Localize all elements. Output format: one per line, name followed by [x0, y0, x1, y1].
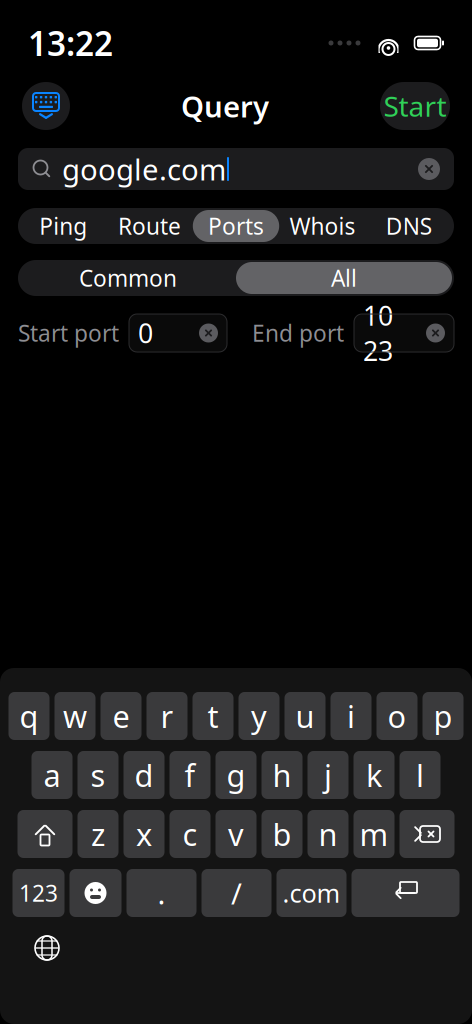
button[interactable]: Clear 1023 field — [426, 323, 445, 342]
staticText: Ping — [39, 211, 87, 241]
staticText: l — [416, 755, 424, 795]
staticText: c — [182, 814, 197, 854]
button[interactable]: Whois — [279, 210, 366, 242]
staticText: Query — [181, 86, 269, 125]
button[interactable]: u — [284, 692, 325, 740]
button[interactable]: o — [376, 692, 417, 740]
staticText: Start — [383, 87, 446, 125]
button[interactable]: e — [100, 692, 141, 740]
staticText: k — [366, 755, 382, 795]
staticText: m — [359, 814, 388, 854]
button[interactable]: Next keyboard — [24, 925, 70, 971]
staticText: End port — [252, 318, 344, 348]
staticText: p — [433, 696, 452, 736]
staticText: google.com — [62, 149, 226, 188]
button[interactable]: d — [123, 751, 164, 799]
button[interactable]: s — [77, 751, 118, 799]
staticText: Start port — [18, 318, 119, 348]
staticText: All — [331, 263, 357, 293]
staticText: z — [91, 814, 105, 854]
button[interactable]: m — [353, 810, 394, 858]
staticText: Route — [118, 211, 181, 241]
button[interactable]: l — [399, 751, 440, 799]
button[interactable]: Return — [351, 869, 459, 917]
staticText: d — [134, 755, 153, 795]
staticText: g — [226, 755, 245, 795]
staticText: f — [184, 755, 195, 795]
button[interactable]: z — [77, 810, 118, 858]
button[interactable]: / — [201, 869, 271, 917]
staticText: o — [387, 696, 406, 736]
button[interactable]: y — [238, 692, 279, 740]
staticText: .com — [282, 876, 340, 910]
button[interactable]: Clear 0 field — [199, 323, 218, 342]
button[interactable]: All — [236, 262, 452, 294]
staticText: n — [318, 814, 337, 854]
button[interactable]: 123 — [12, 869, 64, 917]
staticText: e — [112, 696, 129, 736]
staticText: DNS — [386, 211, 432, 241]
staticText: w — [63, 696, 87, 736]
button[interactable]: Ports — [193, 210, 279, 242]
button[interactable]: g — [215, 751, 256, 799]
button[interactable]: Emoji — [69, 869, 121, 917]
staticText: h — [272, 755, 291, 795]
staticText: / — [231, 873, 242, 912]
button[interactable]: p — [422, 692, 463, 740]
button[interactable]: Hide keyboard — [22, 82, 70, 130]
button[interactable]: h — [261, 751, 302, 799]
button[interactable]: j — [307, 751, 348, 799]
button[interactable]: v — [215, 810, 256, 858]
button[interactable]: DNS — [366, 210, 452, 242]
staticText: q — [19, 696, 38, 736]
staticText: x — [136, 814, 152, 854]
staticText: . — [157, 873, 165, 912]
staticText: j — [324, 755, 332, 795]
button[interactable]: k — [353, 751, 394, 799]
button[interactable]: t — [192, 692, 233, 740]
button[interactable]: i — [330, 692, 371, 740]
button[interactable]: Clear search — [418, 158, 440, 180]
button[interactable]: Shift — [17, 810, 72, 858]
button[interactable]: Route — [106, 210, 193, 242]
button[interactable]: a — [31, 751, 72, 799]
button[interactable]: q — [8, 692, 49, 740]
button[interactable]: w — [54, 692, 95, 740]
staticText: Common — [79, 263, 177, 293]
staticText: 1023 — [363, 298, 393, 368]
staticText: 0 — [138, 315, 153, 351]
button[interactable]: . — [126, 869, 196, 917]
staticText: y — [251, 696, 267, 736]
staticText: Whois — [289, 211, 355, 241]
staticText: b — [272, 814, 291, 854]
staticText: u — [295, 696, 314, 736]
button[interactable]: n — [307, 810, 348, 858]
staticText: i — [347, 696, 355, 736]
button[interactable]: Ping — [20, 210, 106, 242]
button[interactable]: Delete — [399, 810, 454, 858]
button[interactable]: r — [146, 692, 187, 740]
button[interactable]: .com — [276, 869, 346, 917]
button[interactable]: Common — [20, 262, 236, 294]
staticText: 123 — [19, 878, 58, 908]
button[interactable]: Start — [380, 82, 450, 130]
button[interactable]: f — [169, 751, 210, 799]
button[interactable]: c — [169, 810, 210, 858]
button[interactable]: x — [123, 810, 164, 858]
staticText: a — [43, 755, 60, 795]
staticText: s — [90, 755, 105, 795]
staticText: v — [228, 814, 244, 854]
staticText: Ports — [208, 211, 264, 241]
staticText: r — [160, 696, 173, 736]
staticText: t — [207, 696, 218, 736]
staticText: 13:22 — [28, 21, 113, 65]
button[interactable]: b — [261, 810, 302, 858]
